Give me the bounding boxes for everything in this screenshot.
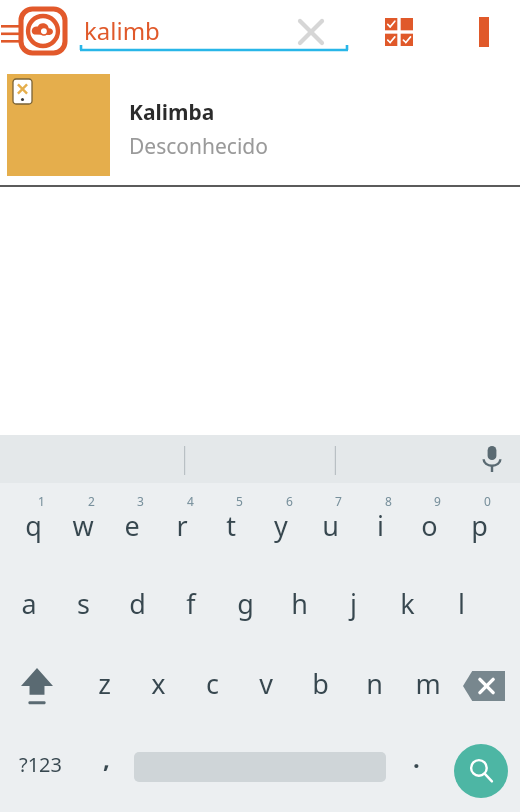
button[interactable]: 7 — [305, 493, 355, 571]
button[interactable]: Voice input — [470, 437, 514, 481]
staticText: r — [176, 507, 188, 544]
button[interactable]: More options — [460, 8, 508, 56]
staticText: x — [151, 665, 166, 702]
button[interactable]: 0 — [454, 493, 504, 571]
staticText: j — [350, 585, 357, 622]
staticText: n — [366, 665, 383, 702]
button[interactable]: v — [241, 653, 291, 725]
button[interactable]: s — [58, 573, 108, 645]
staticText: 0 — [484, 493, 491, 509]
button[interactable]: b — [295, 653, 345, 725]
button[interactable]: App logo — [20, 8, 66, 54]
staticText: m — [415, 665, 441, 702]
staticText: y — [274, 507, 288, 544]
staticText: w — [72, 507, 94, 544]
button[interactable]: x — [133, 653, 183, 725]
button[interactable]: kalimb — [80, 8, 348, 58]
staticText: h — [291, 585, 308, 622]
staticText: o — [421, 507, 438, 544]
button[interactable]: 9 — [404, 493, 454, 571]
button[interactable]: Backspace — [452, 653, 516, 719]
staticText: Desconhecido — [129, 132, 268, 161]
staticText: 8 — [385, 493, 392, 509]
button[interactable]: Shift — [6, 653, 68, 719]
button[interactable]: , — [80, 733, 132, 795]
button[interactable]: Kalimba — [0, 68, 520, 185]
button[interactable]: n — [349, 653, 399, 725]
button[interactable]: c — [187, 653, 237, 725]
staticText: f — [186, 585, 196, 622]
staticText: g — [237, 585, 254, 622]
staticText: c — [206, 665, 219, 702]
button[interactable]: Select all — [375, 8, 423, 56]
button[interactable]: 6 — [256, 493, 306, 571]
staticText: 3 — [137, 493, 144, 509]
staticText: 1 — [38, 493, 45, 509]
button[interactable]: m — [403, 653, 453, 725]
staticText: 6 — [286, 493, 293, 509]
staticText: 4 — [187, 493, 194, 509]
staticText: z — [98, 665, 111, 702]
button[interactable]: j — [328, 573, 378, 645]
staticText: a — [21, 585, 37, 622]
staticText: 9 — [434, 493, 441, 509]
button[interactable]: 2 — [58, 493, 108, 571]
staticText: ?123 — [19, 751, 62, 778]
button[interactable]: 8 — [355, 493, 405, 571]
staticText: 5 — [236, 493, 243, 509]
button[interactable]: 4 — [157, 493, 207, 571]
staticText: q — [25, 507, 42, 544]
staticText: . — [413, 742, 420, 775]
staticText: s — [77, 585, 90, 622]
button[interactable]: f — [166, 573, 216, 645]
staticText: d — [129, 585, 146, 622]
staticText: b — [312, 665, 329, 702]
staticText: v — [259, 665, 273, 702]
staticText: l — [458, 585, 465, 622]
button[interactable]: k — [382, 573, 432, 645]
staticText: kalimb — [84, 14, 160, 47]
staticText: , — [103, 742, 110, 775]
staticText: 7 — [335, 493, 342, 509]
staticText: u — [322, 507, 339, 544]
button[interactable]: a — [4, 573, 54, 645]
staticText: k — [400, 585, 415, 622]
button[interactable]: h — [274, 573, 324, 645]
button[interactable]: 3 — [107, 493, 157, 571]
button[interactable]: Menu — [0, 14, 22, 54]
staticText: t — [226, 507, 236, 544]
button[interactable]: Clear search — [288, 9, 334, 55]
button[interactable]: l — [436, 573, 486, 645]
button[interactable]: . — [392, 733, 440, 795]
staticText: e — [124, 507, 140, 544]
button[interactable]: Search — [454, 744, 508, 798]
staticText: p — [471, 507, 488, 544]
button[interactable]: d — [112, 573, 162, 645]
staticText: i — [377, 507, 384, 544]
button[interactable]: z — [79, 653, 129, 725]
staticText: Kalimba — [129, 98, 215, 127]
button[interactable]: g — [220, 573, 270, 645]
button[interactable]: 5 — [206, 493, 256, 571]
button[interactable]: ?123 — [2, 733, 78, 795]
button[interactable]: 1 — [8, 493, 58, 571]
staticText: 2 — [88, 493, 95, 509]
